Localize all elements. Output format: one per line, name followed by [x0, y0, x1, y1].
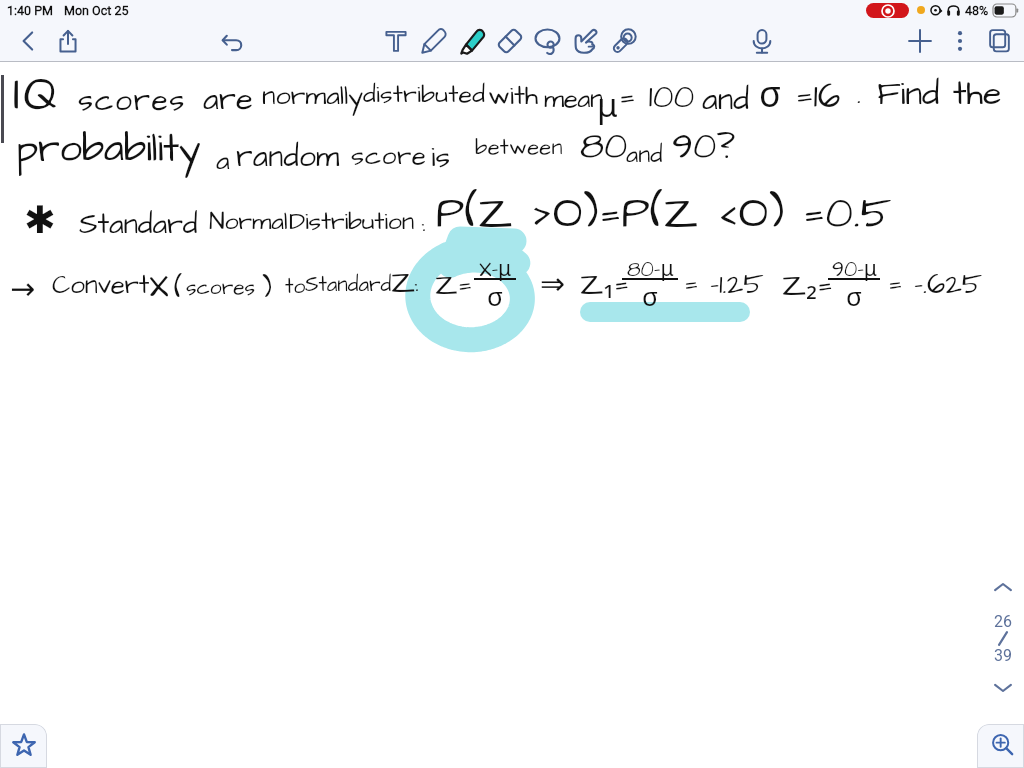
button[interactable]: Microphone: [742, 21, 782, 61]
staticText: 39: [994, 646, 1012, 665]
staticText: mean: [544, 81, 603, 117]
staticText: ⇒: [540, 266, 566, 301]
button[interactable]: Laser pointer: [604, 21, 644, 61]
staticText: ): [262, 269, 272, 308]
staticText: with: [488, 77, 539, 115]
staticText: Z₂=: [782, 262, 833, 308]
button[interactable]: Bookmark page: [0, 724, 47, 768]
button[interactable]: Undo: [212, 21, 252, 61]
staticText: μ: [597, 82, 618, 127]
button[interactable]: Lasso: [528, 21, 568, 61]
staticText: 90–μ: [832, 254, 877, 285]
staticText: σ =16: [759, 69, 841, 122]
staticText: →: [10, 271, 36, 306]
button[interactable]: Back: [8, 21, 48, 61]
staticText: 80: [580, 122, 628, 173]
staticText: a: [216, 142, 230, 180]
button[interactable]: Eraser: [490, 21, 530, 61]
staticText: Normal: [209, 204, 288, 239]
staticText: = -.625: [888, 264, 983, 304]
staticText: 90?: [672, 122, 736, 173]
button[interactable]: Hand: [566, 21, 606, 61]
staticText: is: [431, 137, 450, 177]
staticText: Find the: [877, 70, 1002, 117]
button[interactable]: Zoom in: [977, 724, 1024, 768]
staticText: 1:40 PM: [7, 3, 54, 18]
staticText: X: [149, 263, 169, 309]
staticText: = -1.25: [684, 264, 764, 304]
staticText: are: [203, 78, 253, 121]
staticText: ✱: [24, 198, 56, 242]
staticText: to: [285, 272, 306, 301]
staticText: Convert: [52, 267, 150, 303]
staticText: and: [626, 138, 663, 171]
staticText: scores: [186, 273, 256, 302]
staticText: σ: [487, 278, 503, 313]
staticText: 80–μ: [627, 254, 674, 285]
button[interactable]: More options: [940, 21, 980, 61]
staticText: random: [236, 136, 340, 178]
button[interactable]: Share: [48, 21, 88, 61]
staticText: :: [421, 208, 426, 244]
staticText: Standard: [79, 204, 198, 244]
staticText: Z₁=: [580, 262, 629, 306]
staticText: distributed: [363, 77, 486, 112]
staticText: (: [174, 269, 183, 308]
staticText: Standard: [305, 270, 392, 299]
staticText: Z: [391, 261, 416, 304]
staticText: Z=: [435, 265, 473, 305]
staticText: probability: [16, 122, 201, 178]
staticText: scores: [78, 80, 186, 122]
button[interactable]: Highlighter: [452, 21, 492, 61]
button[interactable]: Pen: [414, 21, 454, 61]
staticText: σ: [642, 278, 658, 313]
staticText: Mon Oct 25: [64, 3, 129, 18]
staticText: 26: [994, 612, 1012, 631]
button[interactable]: Pages: [980, 21, 1020, 61]
staticText: .: [857, 75, 861, 114]
button[interactable]: Add: [900, 21, 940, 61]
staticText: = 100: [619, 74, 695, 120]
staticText: σ: [846, 278, 862, 313]
button[interactable]: Text tool: [376, 21, 416, 61]
staticText: IQ: [13, 62, 61, 129]
staticText: between: [475, 132, 563, 163]
staticText: and: [702, 78, 750, 121]
button[interactable]: Next page: [988, 677, 1018, 699]
staticText: normally: [262, 77, 363, 115]
staticText: :: [414, 268, 419, 304]
button[interactable]: Previous page: [988, 576, 1018, 598]
staticText: 48%: [965, 3, 989, 18]
staticText: P(Z >O)=P(Z <O) =0.5: [436, 184, 893, 245]
staticText: score: [351, 138, 427, 174]
staticText: Distribution: [289, 204, 415, 239]
staticText: X–μ: [479, 254, 512, 285]
